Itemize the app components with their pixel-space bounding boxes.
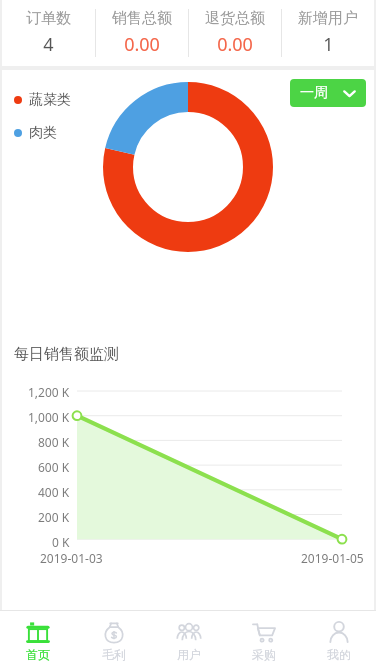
button[interactable]: 销售总额 xyxy=(96,0,188,66)
staticText: 用户 xyxy=(177,647,201,662)
button[interactable]: 新增用户 xyxy=(282,0,374,66)
staticText: 800 K xyxy=(38,434,70,450)
staticText: 2019-01-05 xyxy=(301,550,364,566)
staticText: 1,000 K xyxy=(28,409,70,425)
staticText: 0.00 xyxy=(217,32,253,57)
staticText: 毛利 xyxy=(102,647,126,662)
button[interactable]: 我的 xyxy=(301,611,376,670)
staticText: 200 K xyxy=(38,509,70,525)
staticText: 采购 xyxy=(252,647,276,662)
button[interactable]: 采购 xyxy=(226,611,301,670)
button[interactable]: 退货总额 xyxy=(189,0,281,66)
staticText: 1 xyxy=(323,32,334,57)
button[interactable]: 蔬菜类 xyxy=(14,91,71,109)
staticText: 退货总额 xyxy=(205,9,265,28)
button[interactable]: 用户 xyxy=(151,611,226,670)
button[interactable]: 一周 xyxy=(290,79,366,107)
staticText: 首页 xyxy=(26,647,50,662)
staticText: 每日销售额监测 xyxy=(14,345,119,364)
staticText: 600 K xyxy=(38,459,70,475)
staticText: 2019-01-03 xyxy=(40,550,103,566)
staticText: 一周 xyxy=(300,84,328,102)
button[interactable]: 肉类 xyxy=(14,124,57,142)
button[interactable]: 订单数 xyxy=(2,0,95,66)
staticText: 0.00 xyxy=(124,32,160,57)
staticText: 400 K xyxy=(38,484,70,500)
staticText: 0 K xyxy=(52,534,70,550)
staticText: 蔬菜类 xyxy=(29,91,71,109)
staticText: 肉类 xyxy=(29,124,57,142)
staticText: 新增用户 xyxy=(298,9,358,28)
staticText: 1,200 K xyxy=(28,384,70,400)
staticText: 我的 xyxy=(327,647,351,662)
button[interactable]: 首页 xyxy=(0,611,76,670)
button[interactable]: 毛利 xyxy=(76,611,151,670)
staticText: 4 xyxy=(43,32,54,57)
staticText: 订单数 xyxy=(26,9,71,28)
staticText: 销售总额 xyxy=(112,9,172,28)
